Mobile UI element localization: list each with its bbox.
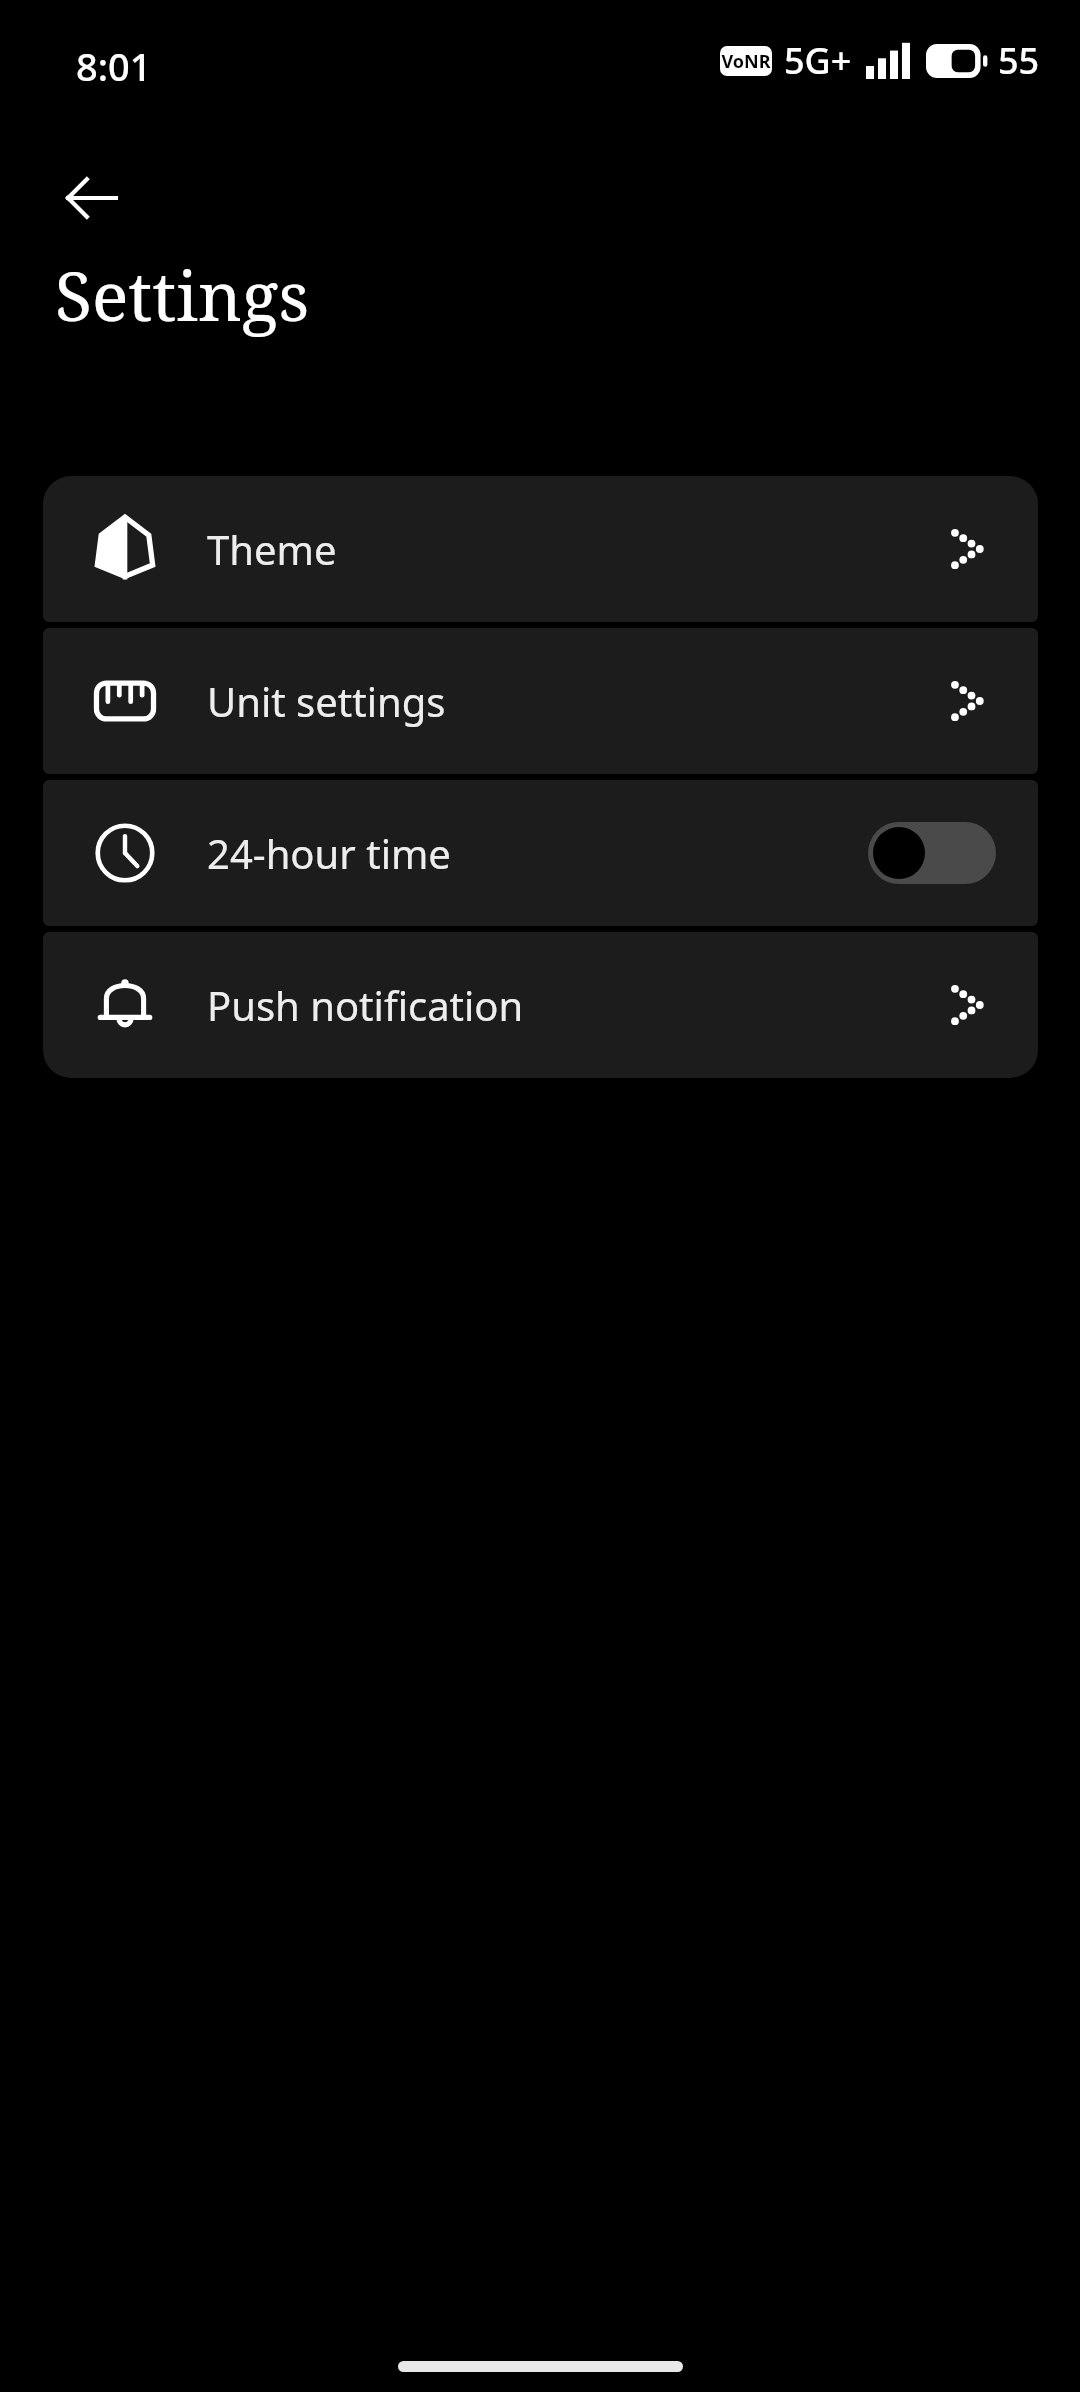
staticText: VoNR <box>721 49 771 74</box>
staticText: Push notification <box>207 978 524 1032</box>
button[interactable]: Push notification <box>43 932 1038 1078</box>
button[interactable]: Unit settings <box>43 628 1038 774</box>
button[interactable]: Back <box>43 150 139 246</box>
staticText: Settings <box>55 248 310 341</box>
staticText: Unit settings <box>207 674 446 728</box>
staticText: Theme <box>207 522 337 576</box>
button[interactable]: 24-hour time <box>43 780 1038 926</box>
button[interactable]: 24-hour time toggle <box>868 822 996 884</box>
staticText: 24-hour time <box>207 826 451 880</box>
other: Open <box>942 522 996 576</box>
other: Open <box>942 674 996 728</box>
staticText: 5G+ <box>784 36 852 85</box>
staticText: 8:01 <box>76 40 152 92</box>
button[interactable]: Theme <box>43 476 1038 622</box>
staticText: 55 <box>998 36 1040 85</box>
other: Open <box>942 978 996 1032</box>
